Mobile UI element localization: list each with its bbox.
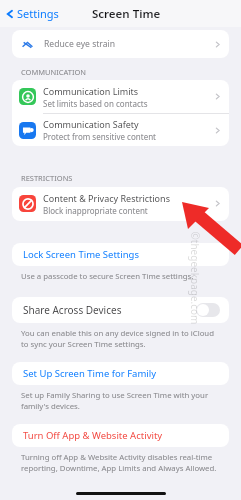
button[interactable]: Lock Screen Time Settings — [12, 243, 229, 266]
staticText: ©thegeekpage.com — [187, 231, 201, 324]
staticText: Use a passcode to secure Screen Time set… — [21, 271, 194, 282]
staticText: COMMUNICATION — [21, 67, 87, 77]
button[interactable]: Share Across Devices toggle — [196, 303, 220, 317]
staticText: You can enable this on any device signed… — [21, 328, 214, 350]
staticText: Screen Time — [92, 6, 161, 22]
button[interactable]: Share Across Devices — [12, 297, 229, 323]
staticText: Set Up Screen Time for Family — [23, 367, 157, 380]
staticText: Communication Safety — [43, 118, 139, 130]
staticText: Settings — [17, 6, 59, 21]
staticText: Content & Privacy Restrictions — [43, 192, 170, 204]
staticText: Turning off App & Website Activity disab… — [21, 452, 217, 474]
staticText: Set limits based on contacts — [43, 98, 148, 109]
staticText: Protect from sensitive content — [43, 131, 156, 142]
staticText: Turn Off App & Website Activity — [23, 429, 163, 442]
button[interactable]: Reduce eye strain — [12, 30, 229, 58]
button[interactable]: Turn Off App & Website Activity — [12, 424, 229, 447]
button[interactable]: Content & Privacy Restrictions — [12, 187, 229, 220]
staticText: Lock Screen Time Settings — [23, 248, 139, 261]
button[interactable]: Set Up Screen Time for Family — [12, 362, 229, 385]
button[interactable]: Settings — [5, 6, 59, 21]
staticText: Reduce eye strain — [44, 38, 116, 50]
button[interactable]: Communication Limits — [12, 80, 229, 113]
button[interactable]: Communication Safety — [12, 114, 229, 146]
staticText: Block inappropriate content — [43, 205, 148, 216]
staticText: Share Across Devices — [23, 303, 122, 317]
staticText: Set up Family Sharing to use Screen Time… — [21, 390, 209, 412]
staticText: RESTRICTIONS — [21, 173, 73, 183]
staticText: Communication Limits — [43, 85, 139, 97]
